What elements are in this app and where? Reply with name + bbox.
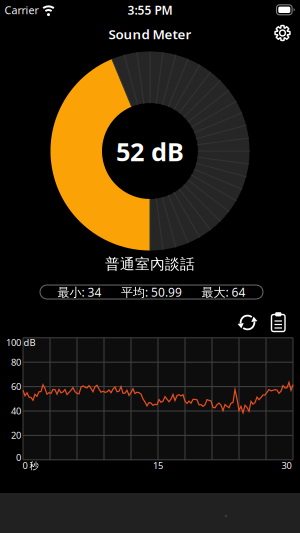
staticText: 0 (16, 451, 21, 464)
staticText: 60 (11, 380, 21, 393)
staticText: 20 (11, 429, 21, 441)
button[interactable]: Copy results (266, 311, 290, 335)
staticText: 3:55 PM (127, 2, 172, 18)
staticText: 80 (11, 356, 21, 368)
staticText: 100 (6, 336, 21, 348)
staticText: 40 (11, 405, 21, 417)
staticText: 平均: 50.99 (121, 284, 182, 300)
staticText: Carrier (4, 3, 38, 17)
button[interactable]: Settings (270, 21, 294, 45)
staticText: Sound Meter (108, 25, 191, 43)
button[interactable]: Reset (234, 309, 260, 335)
staticText: 15 (153, 459, 163, 472)
staticText: 52 dB (116, 135, 184, 168)
staticText: 最小: 34 (57, 284, 101, 300)
staticText: 0 秒 (22, 459, 38, 472)
staticText: dB (23, 336, 35, 349)
staticText: 最大: 64 (201, 284, 245, 300)
staticText: 普通室內談話 (105, 255, 195, 273)
staticText: 30 (281, 459, 291, 472)
